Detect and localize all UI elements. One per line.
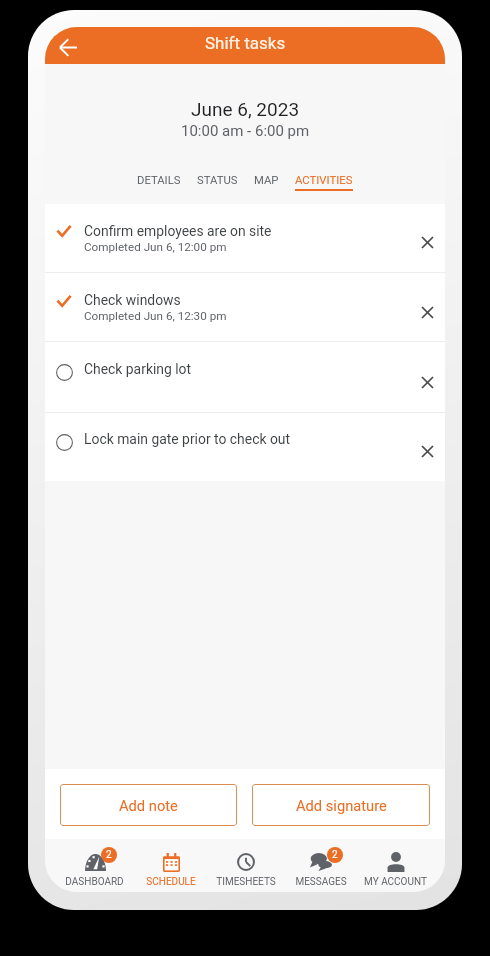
- button[interactable]: ACTIVITIES: [293, 174, 355, 191]
- staticText: Add signature: [296, 797, 387, 814]
- button[interactable]: STATUS: [195, 174, 240, 189]
- button[interactable]: SCHEDULE: [133, 839, 208, 892]
- button[interactable]: Mark complete: [45, 413, 445, 481]
- button[interactable]: Completed: [54, 291, 74, 311]
- staticText: Completed Jun 6, 12:30 pm: [84, 309, 227, 323]
- button[interactable]: Completed: [54, 221, 74, 241]
- button[interactable]: Back: [50, 29, 86, 65]
- staticText: Confirm employees are on site: [84, 223, 272, 239]
- staticText: MAP: [254, 174, 279, 187]
- button[interactable]: Remove task: [411, 226, 443, 258]
- staticText: 10:00 am - 6:00 pm: [181, 122, 310, 140]
- button[interactable]: Remove task: [411, 366, 443, 398]
- staticText: DASHBOARD: [65, 876, 124, 888]
- staticText: SCHEDULE: [146, 876, 196, 888]
- button[interactable]: 2: [57, 839, 132, 892]
- button[interactable]: Completed: [45, 204, 445, 272]
- staticText: Completed Jun 6, 12:00 pm: [84, 240, 227, 254]
- button[interactable]: DETAILS: [135, 174, 183, 189]
- staticText: MY ACCOUNT: [364, 876, 427, 888]
- button[interactable]: Remove task: [411, 296, 443, 328]
- staticText: MESSAGES: [295, 876, 347, 888]
- button[interactable]: TIMESHEETS: [208, 839, 283, 892]
- staticText: TIMESHEETS: [216, 876, 276, 888]
- staticText: DETAILS: [137, 174, 181, 187]
- staticText: June 6, 2023: [191, 98, 300, 120]
- staticText: 2: [106, 849, 112, 861]
- button[interactable]: MAP: [252, 174, 281, 189]
- button[interactable]: Mark complete: [54, 432, 74, 452]
- staticText: 2: [332, 849, 338, 861]
- staticText: ACTIVITIES: [295, 174, 353, 187]
- button[interactable]: Add note: [60, 784, 237, 826]
- button[interactable]: Mark complete: [54, 362, 74, 382]
- button[interactable]: Add signature: [252, 784, 430, 826]
- staticText: Shift tasks: [205, 33, 286, 53]
- button[interactable]: Mark complete: [45, 342, 445, 412]
- staticText: Lock main gate prior to check out: [84, 431, 291, 447]
- button[interactable]: Remove task: [411, 435, 443, 467]
- button[interactable]: Completed: [45, 273, 445, 341]
- button[interactable]: 2: [283, 839, 358, 892]
- staticText: Check windows: [84, 292, 181, 308]
- button[interactable]: MY ACCOUNT: [358, 839, 433, 892]
- staticText: Check parking lot: [84, 361, 192, 377]
- staticText: Add note: [119, 797, 178, 814]
- staticText: STATUS: [197, 174, 238, 187]
